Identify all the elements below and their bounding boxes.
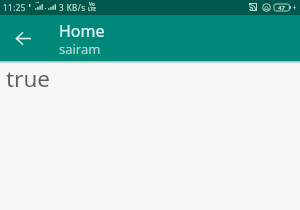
staticText: 3 KB/s (59, 2, 86, 13)
staticText: 47 (278, 4, 285, 11)
staticText: 11:25 (3, 2, 26, 13)
button[interactable]: Navigate up (8, 23, 39, 54)
staticText: Home (59, 20, 105, 42)
staticText: true (6, 63, 51, 94)
staticText: Vo (89, 1, 95, 7)
staticText: LTE (88, 6, 96, 12)
staticText: sairam (59, 40, 101, 58)
